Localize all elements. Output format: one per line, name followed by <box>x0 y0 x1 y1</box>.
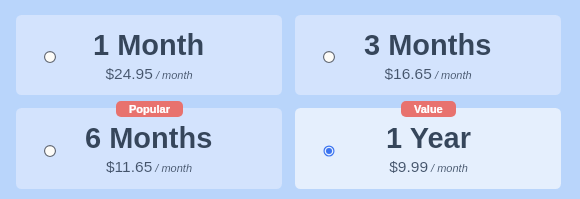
staticText: 1 Year <box>386 122 471 154</box>
staticText: 6 Months <box>85 122 213 154</box>
staticText: $9.99 / month <box>389 158 468 175</box>
staticText: $16.65 / month <box>384 65 472 82</box>
button[interactable]: 1 Year plan, $9.99 per month <box>295 108 561 189</box>
button[interactable]: 3 Months plan, $16.65 per month <box>295 15 561 95</box>
staticText: 1 Month <box>93 29 205 61</box>
staticText: $11.65 / month <box>106 158 192 175</box>
staticText: 3 Months <box>364 29 492 61</box>
staticText: Value <box>414 103 443 115</box>
button[interactable]: 1 Month plan, $24.95 per month <box>16 15 282 95</box>
staticText: Popular <box>129 103 170 115</box>
staticText: $24.95 / month <box>105 65 193 82</box>
button[interactable]: 6 Months plan, $11.65 per month <box>16 108 282 189</box>
